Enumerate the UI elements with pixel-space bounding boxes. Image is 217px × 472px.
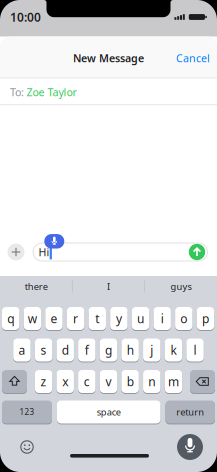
staticText: Cancel xyxy=(176,51,210,65)
button[interactable]: u xyxy=(132,307,149,331)
staticText: n xyxy=(148,373,155,389)
staticText: To: xyxy=(10,85,24,99)
staticText: return xyxy=(176,406,204,418)
button[interactable]: l xyxy=(186,338,204,362)
button[interactable]: f xyxy=(78,338,96,362)
button[interactable]: h xyxy=(121,338,139,362)
button[interactable]: Delete xyxy=(190,370,215,394)
button[interactable]: Send xyxy=(189,244,205,260)
staticText: v xyxy=(105,373,111,389)
button[interactable]: Apps xyxy=(7,243,24,260)
button[interactable]: guys xyxy=(146,276,216,297)
staticText: guys xyxy=(170,280,191,293)
staticText: y xyxy=(116,310,122,326)
button[interactable]: I xyxy=(73,276,143,297)
button[interactable]: y xyxy=(110,307,128,331)
button[interactable]: w xyxy=(24,307,41,331)
button[interactable]: g xyxy=(100,338,117,362)
staticText: j xyxy=(150,342,153,358)
button[interactable]: j xyxy=(143,338,160,362)
staticText: I xyxy=(107,280,110,293)
button[interactable]: Cancel xyxy=(176,51,210,65)
button[interactable]: n xyxy=(143,370,160,394)
button[interactable]: t xyxy=(89,307,106,331)
staticText: k xyxy=(170,342,176,358)
staticText: w xyxy=(28,310,37,326)
staticText: p xyxy=(202,310,209,326)
staticText: l xyxy=(194,342,197,358)
staticText: b xyxy=(127,373,134,389)
button[interactable]: 123 xyxy=(2,400,52,424)
staticText: c xyxy=(84,373,90,389)
button[interactable]: v xyxy=(100,370,117,394)
staticText: q xyxy=(7,310,14,326)
staticText: m xyxy=(168,373,179,389)
button[interactable]: q xyxy=(2,307,19,331)
staticText: z xyxy=(41,373,47,389)
button[interactable]: d xyxy=(56,338,74,362)
button[interactable]: p xyxy=(197,307,214,331)
staticText: Zoe Taylor xyxy=(26,85,76,99)
button[interactable]: o xyxy=(175,307,192,331)
button[interactable]: Emoji xyxy=(18,438,35,455)
button[interactable]: space xyxy=(57,400,160,424)
button[interactable]: Shift xyxy=(2,370,27,394)
button[interactable]: e xyxy=(45,307,63,331)
button[interactable]: k xyxy=(165,338,182,362)
staticText: s xyxy=(41,342,47,358)
button[interactable]: there xyxy=(1,276,71,297)
staticText: New Message xyxy=(73,51,144,65)
staticText: g xyxy=(105,342,112,358)
staticText: x xyxy=(62,373,68,389)
staticText: there xyxy=(25,280,48,293)
button[interactable]: s xyxy=(35,338,52,362)
button[interactable]: a xyxy=(13,338,31,362)
staticText: Hi xyxy=(38,245,49,259)
button[interactable]: Message text field xyxy=(33,243,207,261)
staticText: e xyxy=(50,310,57,326)
button[interactable]: r xyxy=(67,307,84,331)
staticText: t xyxy=(95,310,99,326)
staticText: 10:00 xyxy=(10,9,41,25)
button[interactable]: return xyxy=(165,400,215,424)
staticText: space xyxy=(97,406,121,418)
button[interactable]: b xyxy=(121,370,139,394)
staticText: r xyxy=(73,310,78,326)
staticText: i xyxy=(161,310,164,326)
button[interactable]: m xyxy=(165,370,182,394)
staticText: u xyxy=(137,310,144,326)
staticText: o xyxy=(180,310,187,326)
staticText: d xyxy=(62,342,69,358)
button[interactable]: c xyxy=(78,370,96,394)
button[interactable]: To: xyxy=(0,78,217,105)
staticText: h xyxy=(127,342,134,358)
button[interactable]: x xyxy=(56,370,74,394)
button[interactable]: z xyxy=(35,370,52,394)
button[interactable]: Dictation xyxy=(177,434,203,460)
staticText: a xyxy=(18,342,25,358)
button[interactable]: i xyxy=(153,307,171,331)
staticText: 123 xyxy=(19,407,34,417)
staticText: f xyxy=(85,342,89,358)
